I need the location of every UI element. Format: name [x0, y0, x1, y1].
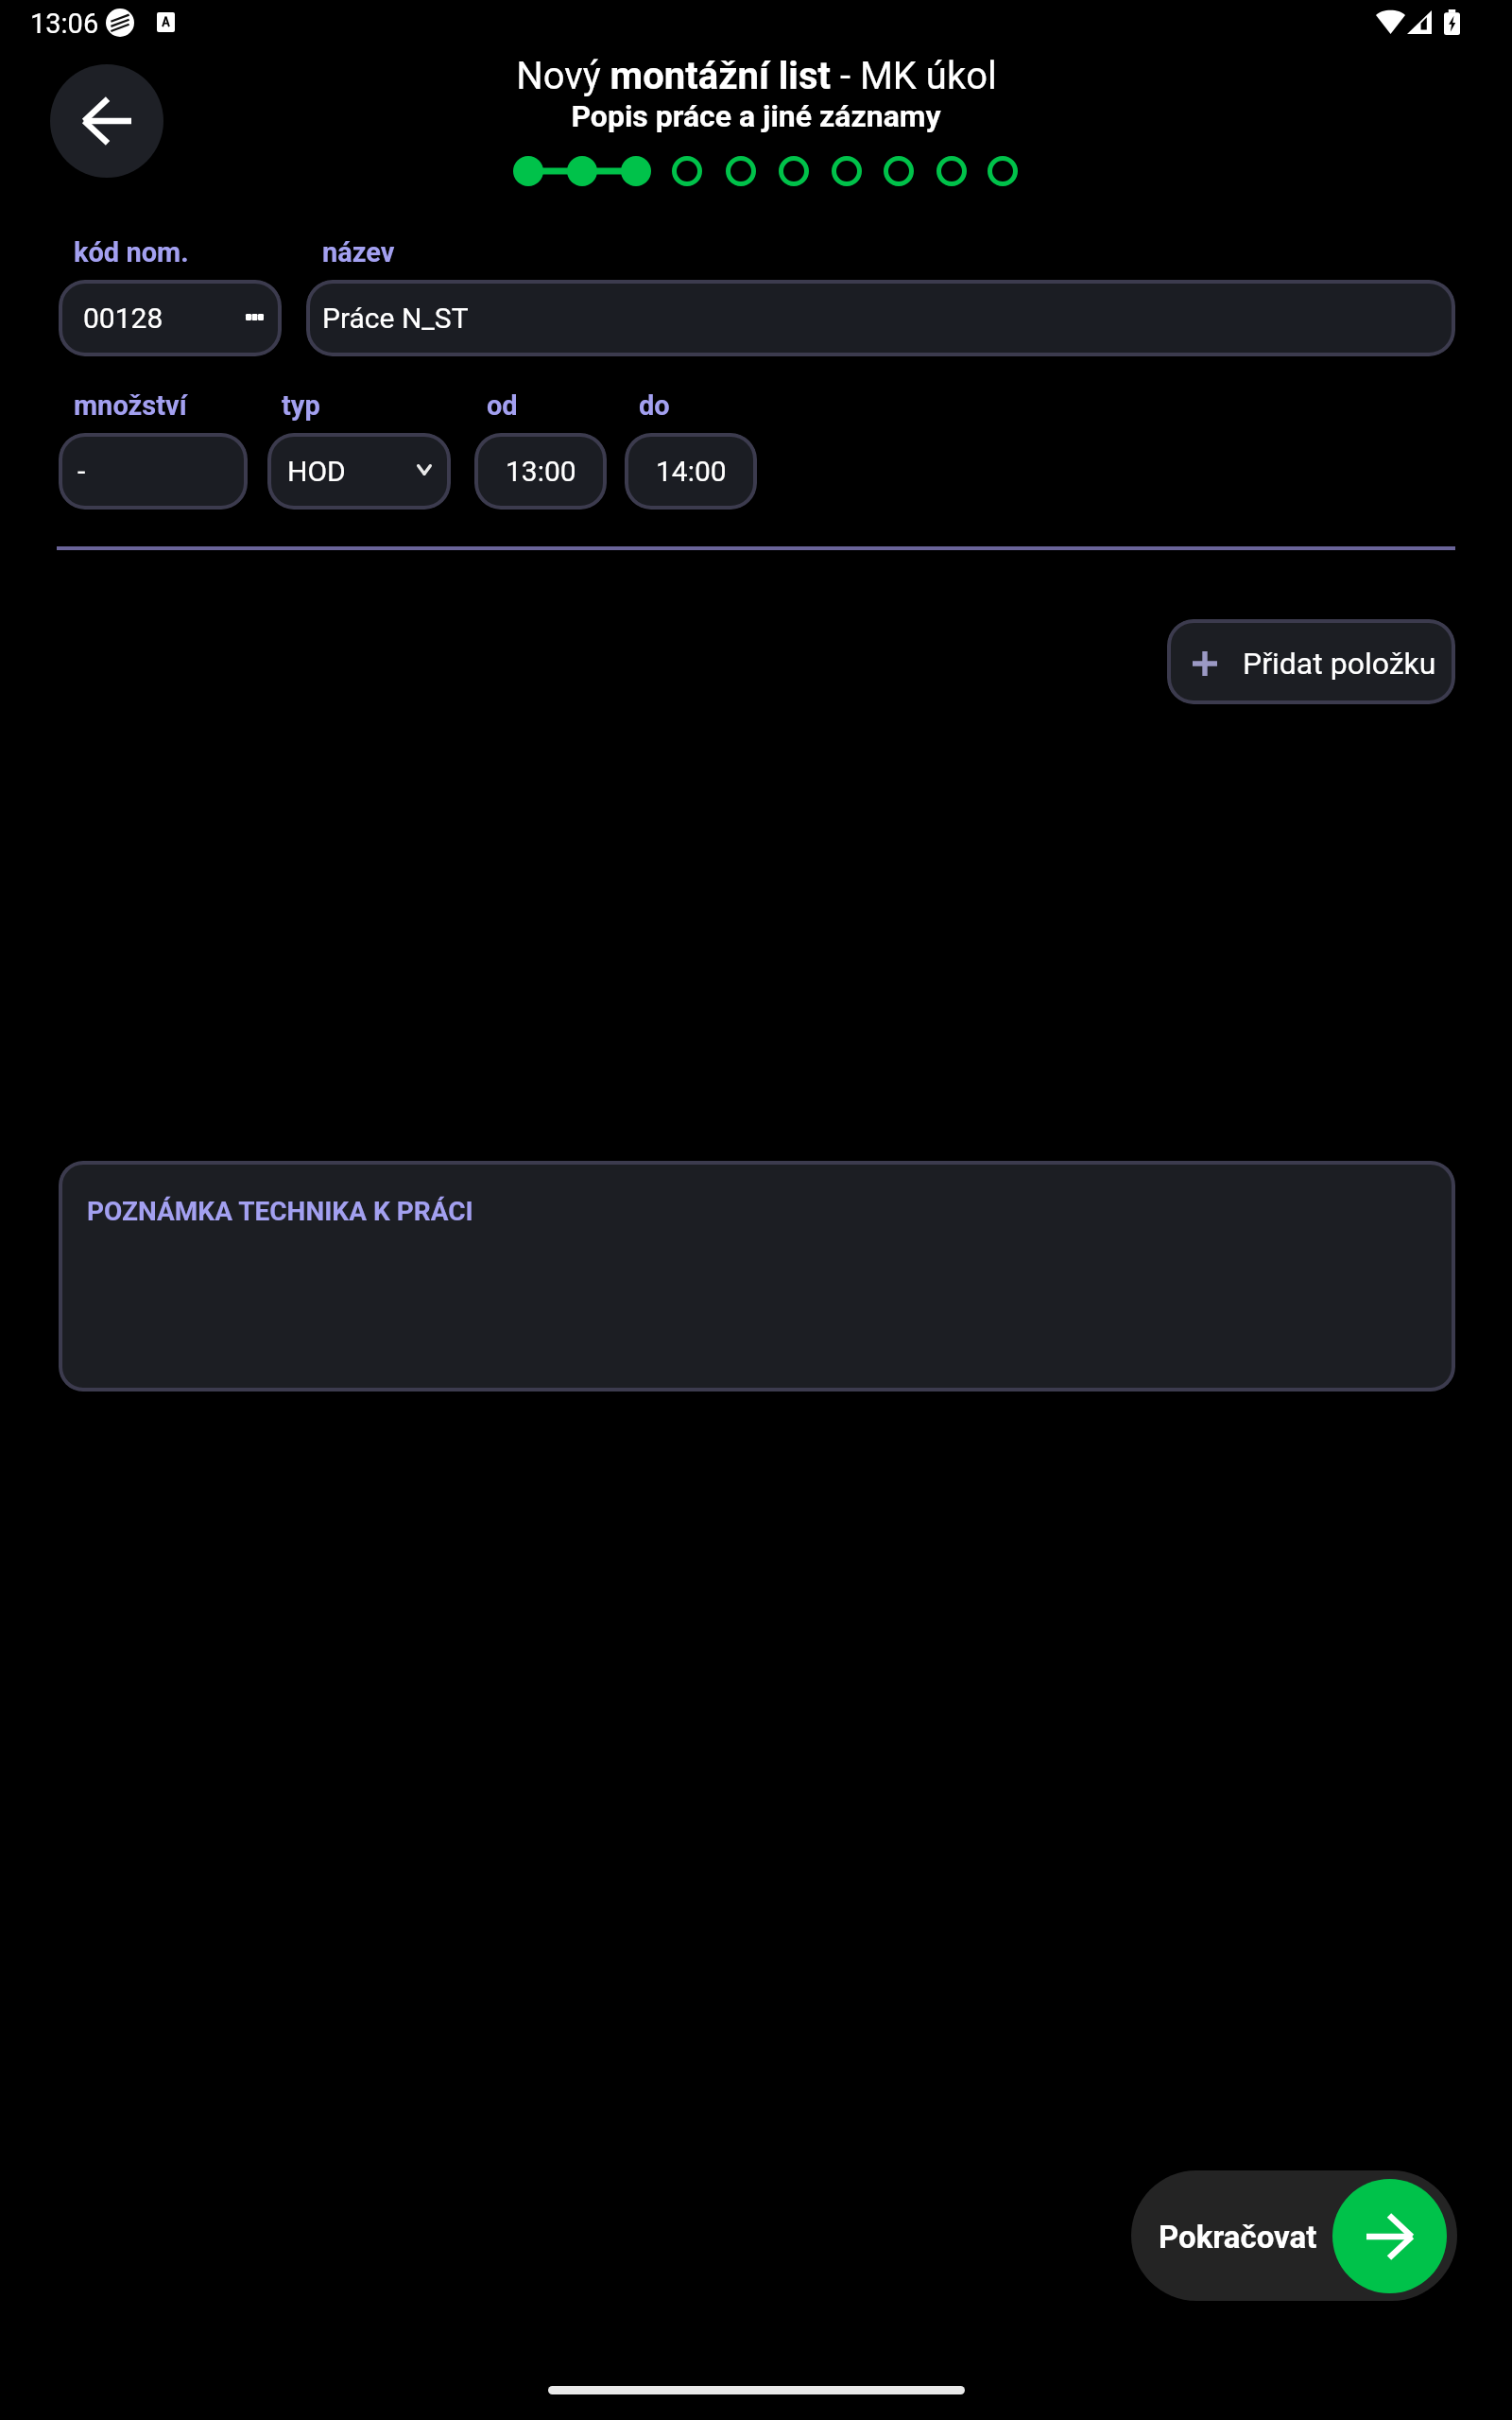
button[interactable]: Back: [50, 64, 163, 178]
staticText: kód nom.: [74, 236, 189, 268]
button[interactable]: 00128: [59, 280, 282, 356]
button[interactable]: POZNÁMKA TECHNIKA K PRÁCI: [59, 1161, 1455, 1391]
button[interactable]: Přidat položku: [1167, 619, 1455, 704]
button[interactable]: Práce N_ST: [306, 280, 1455, 356]
staticText: Přidat položku: [1243, 646, 1436, 682]
button[interactable]: Continue: [1332, 2179, 1447, 2293]
staticText: 13:06: [30, 8, 99, 40]
staticText: Popis práce a jiné záznamy: [571, 98, 941, 134]
staticText: množství: [74, 389, 187, 422]
staticText: typ: [282, 389, 320, 422]
staticText: HOD: [287, 455, 346, 488]
button[interactable]: Pokračovat: [1131, 2170, 1457, 2301]
button[interactable]: HOD: [267, 433, 451, 510]
button[interactable]: 14:00: [625, 433, 757, 510]
staticText: 14:00: [656, 455, 727, 488]
staticText: Nový montážní list - MK úkol: [516, 54, 997, 98]
staticText: 13:00: [506, 455, 576, 488]
staticText: Práce N_ST: [322, 302, 469, 335]
staticText: POZNÁMKA TECHNIKA K PRÁCI: [87, 1196, 473, 1227]
button[interactable]: -: [59, 433, 248, 510]
staticText: -: [77, 455, 86, 488]
staticText: Pokračovat: [1159, 2219, 1317, 2256]
staticText: 00128: [83, 302, 163, 335]
staticText: do: [639, 389, 670, 422]
staticText: od: [487, 389, 518, 422]
button[interactable]: 13:00: [474, 433, 607, 510]
staticText: název: [322, 236, 395, 268]
